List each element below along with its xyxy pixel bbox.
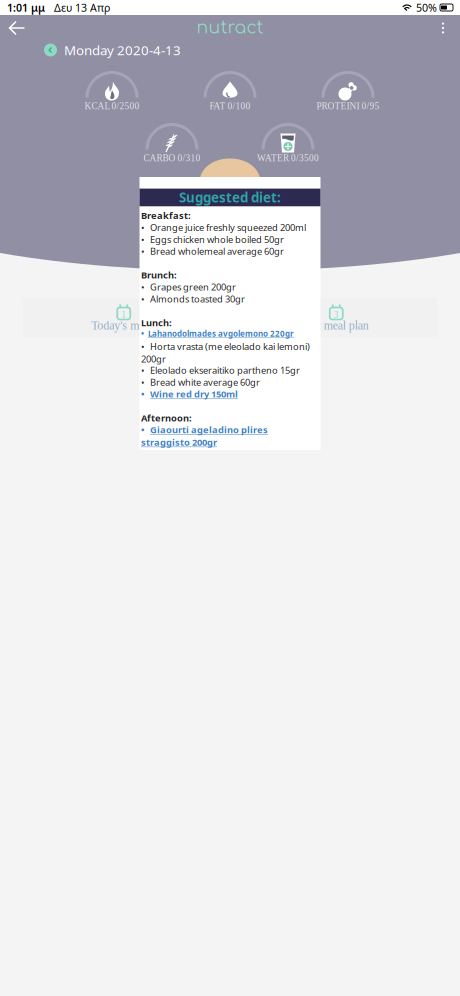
staticText: Monday 2020-4-13 [64, 41, 181, 59]
staticText: My meal plan [304, 319, 369, 332]
staticText: KCAL 0/2500 [84, 101, 139, 111]
staticText: • Horta vrasta (me eleolado kai lemoni) … [141, 340, 310, 365]
staticText: • Bread wholemeal average 60gr [141, 245, 284, 257]
staticText: • Eleolado ekseraitiko partheno 15gr [141, 364, 300, 376]
button[interactable]: Back [0, 15, 34, 41]
staticText: Lunch: [141, 316, 172, 329]
button[interactable]: 1 [23, 298, 224, 337]
staticText: FAT 0/100 [209, 101, 250, 111]
staticText: Suggested diet: [179, 189, 281, 206]
staticText: Breakfast: [141, 209, 191, 222]
staticText: Afternoon: [141, 412, 192, 424]
staticText: • Wine red dry 150ml [141, 388, 238, 400]
staticText: • Almonds toasted 30gr [141, 293, 245, 305]
staticText: 1 [121, 309, 126, 320]
button[interactable]: More options [426, 15, 460, 41]
staticText: • Bread white average 60gr [141, 376, 260, 388]
staticText: Δευ 13 Απρ [45, 0, 110, 15]
staticText: CARBO 0/310 [143, 153, 200, 163]
staticText: WATER 0/3500 [257, 153, 319, 163]
staticText: 1:01 μμ [7, 0, 45, 15]
button[interactable]: 3 [235, 298, 437, 337]
staticText: • Eggs chicken whole boiled 50gr [141, 233, 284, 245]
staticText: • Giaourti ageladino plires straggisto 2… [141, 423, 268, 448]
staticText: • Grapes green 200gr [141, 281, 236, 293]
staticText: Brunch: [141, 269, 177, 281]
staticText: Today's menu [91, 319, 156, 332]
staticText: 3 [334, 309, 339, 320]
staticText: 50% [416, 0, 437, 15]
staticText: • Orange juice freshly squeezed 200ml [141, 221, 306, 234]
staticText: nutract [196, 18, 263, 38]
button[interactable]: Monday 2020-4-13 [0, 41, 460, 59]
staticText: • Lahanodolmades avgolemono 220gr [141, 328, 294, 339]
staticText: PROTEINI 0/95 [316, 101, 379, 111]
